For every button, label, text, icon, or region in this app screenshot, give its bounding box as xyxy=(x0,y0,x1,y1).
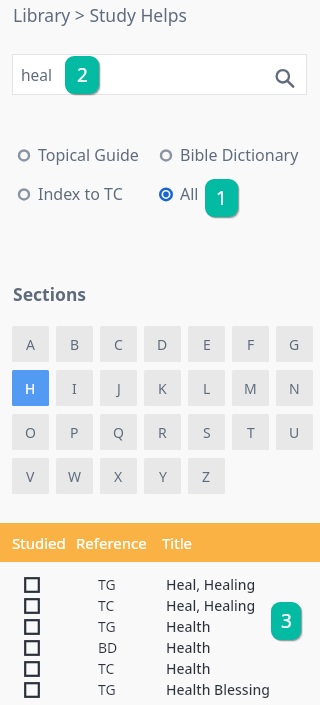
button[interactable]: Search xyxy=(268,61,296,89)
staticText: C xyxy=(114,335,123,354)
button[interactable]: K xyxy=(144,370,181,406)
other: Mark Health studied xyxy=(24,661,40,677)
staticText: H xyxy=(25,379,36,398)
button[interactable]: Mark Health studied xyxy=(0,658,320,679)
staticText: Reference xyxy=(76,533,147,553)
button[interactable]: P xyxy=(56,414,93,450)
button[interactable]: N xyxy=(276,370,313,406)
button[interactable]: W xyxy=(56,458,93,494)
staticText: Title xyxy=(162,533,192,553)
staticText: Topical Guide xyxy=(38,144,139,165)
staticText: BD xyxy=(98,638,166,657)
staticText: O xyxy=(25,423,36,442)
staticText: heal xyxy=(21,64,53,85)
other: Mark Health studied xyxy=(24,640,40,656)
other: Mark Heal, Healing studied xyxy=(24,598,40,614)
staticText: G xyxy=(289,335,300,354)
staticText: 3 xyxy=(281,608,292,634)
staticText: U xyxy=(289,423,300,442)
staticText: A xyxy=(26,335,35,354)
staticText: K xyxy=(158,379,167,398)
staticText: X xyxy=(114,467,123,486)
staticText: P xyxy=(70,423,79,442)
button[interactable]: J xyxy=(100,370,137,406)
staticText: Health xyxy=(166,617,211,636)
button[interactable]: Q xyxy=(100,414,137,450)
staticText: J xyxy=(117,379,121,398)
button[interactable]: F xyxy=(232,326,269,362)
staticText: TG xyxy=(98,680,166,699)
staticText: Health xyxy=(166,659,211,678)
button[interactable]: O xyxy=(12,414,49,450)
button[interactable]: Mark Heal, Healing studied xyxy=(0,595,320,616)
button[interactable]: Topical Guide xyxy=(16,144,139,165)
staticText: Q xyxy=(113,423,124,442)
staticText: TG xyxy=(98,575,166,594)
staticText: V xyxy=(26,467,35,486)
staticText: Studied xyxy=(12,533,66,553)
staticText: N xyxy=(289,379,300,398)
staticText: Health Blessing xyxy=(166,680,270,699)
staticText: F xyxy=(247,335,255,354)
button[interactable]: G xyxy=(276,326,313,362)
staticText: M xyxy=(244,379,257,398)
staticText: Health xyxy=(166,638,211,657)
staticText: TC xyxy=(98,596,166,615)
staticText: Heal, Healing xyxy=(166,596,256,615)
staticText: Sections xyxy=(13,282,87,306)
button[interactable]: Mark Heal, Healing studied xyxy=(0,574,320,595)
button[interactable]: R xyxy=(144,414,181,450)
button[interactable]: 3 xyxy=(271,602,301,640)
button[interactable]: B xyxy=(56,326,93,362)
button[interactable]: S xyxy=(188,414,225,450)
staticText: D xyxy=(157,335,168,354)
button[interactable]: 2 xyxy=(65,56,99,94)
button[interactable]: T xyxy=(232,414,269,450)
button[interactable]: I xyxy=(56,370,93,406)
button[interactable]: Mark Health studied xyxy=(0,637,320,658)
staticText: L xyxy=(203,379,211,398)
button[interactable]: Mark Health studied xyxy=(0,616,320,637)
staticText: Heal, Healing xyxy=(166,575,256,594)
staticText: 1 xyxy=(216,185,227,211)
other: Mark Heal, Healing studied xyxy=(24,577,40,593)
button[interactable]: C xyxy=(100,326,137,362)
staticText: R xyxy=(158,423,167,442)
staticText: E xyxy=(203,335,211,354)
button[interactable]: Y xyxy=(144,458,181,494)
button[interactable]: Z xyxy=(188,458,225,494)
button[interactable]: E xyxy=(188,326,225,362)
button[interactable]: 1 xyxy=(205,179,238,217)
button[interactable]: Mark Health Blessing studied xyxy=(0,679,320,700)
button[interactable]: A xyxy=(12,326,49,362)
button[interactable]: Library > Study Helps xyxy=(13,3,187,27)
staticText: T xyxy=(247,423,255,442)
button[interactable]: V xyxy=(12,458,49,494)
staticText: TC xyxy=(98,659,166,678)
button[interactable]: heal xyxy=(12,54,307,95)
staticText: 2 xyxy=(77,62,88,88)
staticText: All xyxy=(180,183,199,204)
button[interactable]: H xyxy=(12,370,49,406)
button[interactable]: Index to TC xyxy=(16,183,123,204)
staticText: Index to TC xyxy=(38,183,123,204)
staticText: B xyxy=(70,335,80,354)
staticText: Bible Dictionary xyxy=(180,144,299,165)
button[interactable]: M xyxy=(232,370,269,406)
button[interactable]: D xyxy=(144,326,181,362)
button[interactable]: Bible Dictionary xyxy=(158,144,299,165)
button[interactable]: All xyxy=(158,183,199,204)
staticText: TG xyxy=(98,617,166,636)
button[interactable]: L xyxy=(188,370,225,406)
other: Mark Health studied xyxy=(24,619,40,635)
staticText: S xyxy=(203,423,211,442)
other: Mark Health Blessing studied xyxy=(24,682,40,698)
button[interactable]: U xyxy=(276,414,313,450)
staticText: Z xyxy=(202,467,211,486)
staticText: Y xyxy=(159,467,167,486)
button[interactable]: X xyxy=(100,458,137,494)
staticText: W xyxy=(68,467,82,486)
staticText: I xyxy=(72,379,77,398)
